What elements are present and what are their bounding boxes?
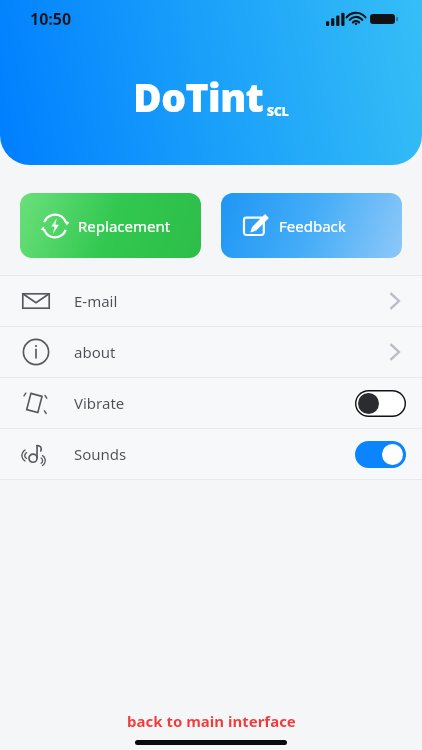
button[interactable]: Replacement xyxy=(20,193,201,258)
staticText: E-mail xyxy=(74,291,118,311)
other: Open xyxy=(384,290,406,312)
button[interactable]: Off xyxy=(355,390,406,417)
other: Open xyxy=(384,341,406,363)
button[interactable]: about xyxy=(0,327,422,377)
staticText: 10:50 xyxy=(30,8,72,30)
button[interactable]: Sounds xyxy=(0,429,422,479)
button[interactable]: E-mail xyxy=(0,276,422,326)
button[interactable]: back to main interface xyxy=(111,707,312,735)
button[interactable]: On xyxy=(355,441,406,468)
button[interactable]: Feedback xyxy=(221,193,402,258)
staticText: DoTint xyxy=(133,70,264,123)
staticText: about xyxy=(74,342,116,362)
staticText: Feedback xyxy=(279,216,346,236)
staticText: SCL xyxy=(267,103,289,119)
staticText: Vibrate xyxy=(74,393,125,413)
staticText: back to main interface xyxy=(127,711,296,731)
button[interactable]: Vibrate xyxy=(0,378,422,428)
staticText: Replacement xyxy=(78,216,171,236)
staticText: Sounds xyxy=(74,444,127,464)
